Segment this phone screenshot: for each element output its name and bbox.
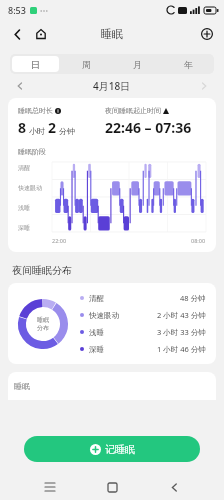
staticText: 月 xyxy=(133,59,142,70)
staticText: 清醒 xyxy=(18,164,30,172)
staticText: 深睡 xyxy=(18,224,30,232)
staticText: 年 xyxy=(184,59,193,70)
staticText: 记睡眠 xyxy=(105,443,135,456)
staticText: 睡眠 xyxy=(37,316,49,324)
staticText: 8:53 xyxy=(8,4,26,16)
button[interactable]: 记睡眠 xyxy=(24,436,200,462)
button[interactable]: 日 xyxy=(12,56,59,72)
button[interactable]: 周 xyxy=(63,56,110,72)
staticText: 夜间睡眠起止时间 xyxy=(105,106,161,115)
button[interactable]: 返回 xyxy=(8,25,26,43)
staticText: 睡眠 xyxy=(14,381,30,391)
staticText: 深睡 xyxy=(89,345,104,354)
staticText: 分布 xyxy=(37,324,49,332)
button[interactable]: 最近任务 xyxy=(38,475,62,499)
button[interactable]: 主页 xyxy=(32,25,50,43)
staticText: 周 xyxy=(82,59,91,70)
staticText: 2 xyxy=(48,118,57,137)
button[interactable]: 年 xyxy=(165,56,212,72)
staticText: 夜间睡眠分布 xyxy=(12,264,72,277)
staticText: 48 分钟 xyxy=(180,293,206,303)
staticText: 快速眼动 xyxy=(18,184,42,192)
staticText: 浅睡 xyxy=(18,204,30,212)
button[interactable]: 后一天 xyxy=(196,78,212,94)
staticText: 日 xyxy=(31,59,40,70)
staticText: 浅睡 xyxy=(89,328,104,337)
staticText: 清醒 xyxy=(89,294,104,303)
staticText: 22:46 – 07:36 xyxy=(105,118,192,137)
staticText: 8 xyxy=(18,118,27,137)
staticText: 睡眠 xyxy=(101,27,123,41)
button[interactable]: 月 xyxy=(114,56,161,72)
staticText: 睡眠总时长 xyxy=(18,106,53,115)
staticText: 睡眠阶段 xyxy=(18,147,46,156)
button[interactable]: 前一天 xyxy=(12,78,28,94)
staticText: 快速眼动 xyxy=(89,311,119,320)
button[interactable]: 添加 xyxy=(198,25,216,43)
staticText: 3 小时 33 分钟 xyxy=(157,327,206,337)
staticText: 08:00 xyxy=(191,237,206,244)
staticText: 分钟 xyxy=(57,125,76,136)
button[interactable]: 返回 xyxy=(162,475,186,499)
staticText: 22:00 xyxy=(52,237,67,244)
staticText: 2 小时 43 分钟 xyxy=(157,310,206,320)
staticText: 4月18日 xyxy=(93,79,131,93)
button[interactable]: 主屏幕 xyxy=(100,475,124,499)
staticText: 1 小时 46 分钟 xyxy=(157,344,206,354)
staticText: 小时 xyxy=(27,125,48,136)
